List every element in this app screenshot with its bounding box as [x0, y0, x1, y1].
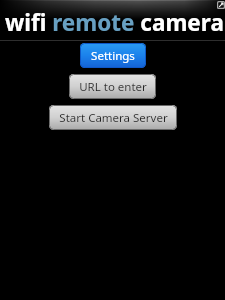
button[interactable]: Settings [80, 43, 146, 68]
staticText: Settings [91, 48, 135, 64]
staticText: Start Camera Server [59, 110, 168, 126]
staticText: wifi remote camera [5, 7, 224, 38]
button[interactable]: URL to enter [69, 74, 156, 99]
button[interactable]: Start Camera Server [49, 105, 177, 130]
staticText: URL to enter [79, 79, 147, 95]
button[interactable]: Expand [217, 1, 225, 9]
